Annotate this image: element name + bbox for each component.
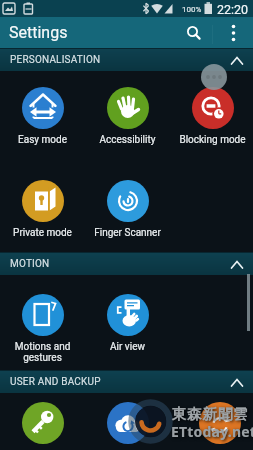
staticText: MOTION xyxy=(10,258,50,270)
staticText: Motions and xyxy=(0,341,85,353)
button[interactable] xyxy=(201,64,227,90)
staticText: Settings xyxy=(9,23,68,42)
button[interactable]: Easy mode xyxy=(0,87,85,149)
button[interactable]: Motions and xyxy=(0,294,85,366)
staticText: Easy mode xyxy=(0,134,85,146)
staticText: Finger Scanner xyxy=(85,227,170,239)
staticText: USER AND BACKUP xyxy=(10,376,101,388)
button[interactable]: Finger Scanner xyxy=(85,180,170,242)
staticText: 東森新聞雲 xyxy=(172,405,249,423)
button[interactable]: Accessibility xyxy=(85,87,170,149)
button[interactable]: Blocking mode xyxy=(170,87,253,149)
staticText: 100% xyxy=(182,5,202,14)
staticText: gestures xyxy=(0,352,85,364)
button[interactable] xyxy=(224,22,244,44)
button[interactable]: Cloud xyxy=(85,402,170,450)
button[interactable]: Accounts xyxy=(0,402,85,450)
button[interactable]: PERSONALISATION xyxy=(0,48,253,71)
button[interactable]: Backup xyxy=(177,402,253,450)
staticText: Blocking mode xyxy=(170,134,253,146)
staticText: Accessibility xyxy=(85,134,170,146)
button[interactable] xyxy=(183,22,205,44)
staticText: Air view xyxy=(85,341,170,353)
staticText: Private mode xyxy=(0,227,85,239)
staticText: ETtoday.net xyxy=(171,422,253,441)
button[interactable]: Air view xyxy=(85,294,170,356)
staticText: PERSONALISATION xyxy=(10,54,101,66)
button[interactable]: Private mode xyxy=(0,180,85,242)
staticText: 22:20 xyxy=(217,2,249,17)
button[interactable]: MOTION xyxy=(0,252,253,275)
button[interactable]: USER AND BACKUP xyxy=(0,370,253,393)
